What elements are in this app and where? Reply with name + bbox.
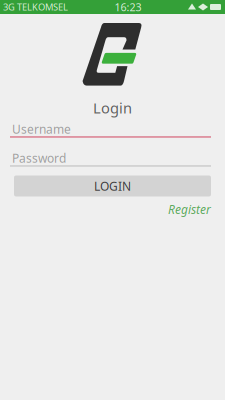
staticText: Login <box>93 98 132 117</box>
staticText: 3G TELKOMSEL <box>3 1 68 13</box>
button[interactable]: LOGIN <box>10 175 211 196</box>
staticText: LOGIN <box>94 178 131 194</box>
staticText: Username <box>12 121 71 137</box>
staticText: Register <box>168 201 211 217</box>
staticText: Password <box>12 150 66 166</box>
button[interactable]: Register <box>168 201 211 217</box>
staticText: 16:23 <box>114 0 141 14</box>
